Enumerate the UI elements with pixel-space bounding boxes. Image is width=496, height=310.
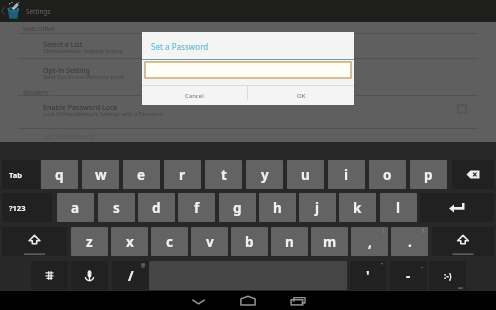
staticText: f [194,199,200,217]
staticText: Tab [9,170,22,180]
button[interactable]: a [57,193,94,222]
staticText: Chimpadeedoo Android Testing [43,47,123,54]
button[interactable]: Enable Password Lock [18,101,478,125]
staticText: Opt-in Setting [43,65,91,75]
staticText: q [55,166,64,184]
staticText: w [95,166,107,184]
button[interactable]: Change keyboard [31,261,68,290]
staticText: e [137,166,146,184]
staticText: Cancel [185,92,204,100]
button[interactable]: s [98,193,135,222]
button[interactable]: Recent apps [286,291,314,310]
staticText: l [396,199,401,217]
button[interactable]: OK [248,86,354,105]
button[interactable]: m [311,227,348,256]
button[interactable]: Shift [2,227,67,256]
button[interactable]: y [246,160,283,189]
button[interactable]: Home [234,291,262,310]
staticText: Lock Chimpadeedoo's Settings with a Pass… [43,110,163,117]
staticText: OK [297,92,306,100]
button[interactable]: / [112,261,149,290]
staticText: Send Opt-In and Welcome Email [43,73,125,80]
button[interactable]: Cancel [142,86,247,105]
button[interactable]: o [369,160,406,189]
button[interactable]: Enter [420,193,494,222]
button[interactable]: e [123,160,160,189]
staticText: Select a List [43,39,83,49]
button[interactable]: ' [350,261,386,290]
button[interactable]: z [71,227,108,256]
button[interactable]: Backspace [452,160,494,189]
button[interactable]: u [287,160,324,189]
staticText: ?123 [9,203,26,213]
button[interactable]: q [41,160,78,189]
staticText: h [273,199,282,217]
staticText: y [261,166,269,184]
staticText: m [323,233,337,251]
button[interactable]: h [259,193,296,222]
staticText: ! [383,228,385,235]
staticText: ' [366,267,370,285]
button[interactable]: f [178,193,215,222]
staticText: ” [381,262,383,269]
button[interactable]: r [164,160,201,189]
button[interactable]: w [82,160,119,189]
button[interactable]: Hide keyboard [183,291,214,310]
staticText: a [71,199,80,217]
button[interactable]: d [138,193,175,222]
staticText: j [315,199,320,217]
button[interactable]: b [231,227,268,256]
button[interactable]: Navigate up [0,0,24,22]
staticText: p [424,166,433,184]
staticText: SECURITY [23,89,49,97]
button[interactable]: j [299,193,336,222]
staticText: ? [422,228,425,235]
button[interactable]: Tab [2,160,40,189]
button[interactable]: Voice input [71,261,108,290]
staticText: d [152,199,161,217]
staticText: Settings [26,7,51,16]
button[interactable]: Opt-in Setting [18,64,478,88]
staticText: c [166,233,173,251]
staticText: _ [421,262,424,269]
staticText: Enable Password Lock [43,102,118,112]
button[interactable]: ?123 [2,193,52,222]
button[interactable]: Shift [432,227,494,256]
button[interactable]: , [351,227,388,256]
staticText: z [86,233,93,251]
staticText: MAILCHIMP [23,25,55,33]
button[interactable]: g [219,193,256,222]
staticText: b [245,233,254,251]
button[interactable]: p [410,160,447,189]
staticText: i [344,166,349,184]
staticText: u [301,166,310,184]
button[interactable]: - [390,261,427,290]
button[interactable]: c [151,227,188,256]
button[interactable]: i [328,160,365,189]
staticText: r [179,166,186,184]
staticText: , [368,233,372,251]
staticText: - [406,267,411,285]
button[interactable]: n [271,227,308,256]
staticText: o [383,166,392,184]
staticText: :-) [444,270,452,281]
button[interactable]: x [111,227,148,256]
button[interactable]: l [380,193,417,222]
button[interactable]: v [191,227,228,256]
button[interactable]: . [391,227,428,256]
staticText: k [353,199,362,217]
button[interactable]: :-) [429,261,466,290]
button[interactable]: k [339,193,376,222]
staticText: Set a Password [151,41,209,52]
staticText: s [113,199,120,217]
button[interactable]: t [205,160,242,189]
staticText: @ [141,262,146,269]
staticText: t [221,166,227,184]
staticText: n [285,233,294,251]
staticText: . [408,233,412,251]
staticText: g [233,199,242,217]
button[interactable]: Select a List [18,38,478,62]
staticText: v [206,233,214,251]
